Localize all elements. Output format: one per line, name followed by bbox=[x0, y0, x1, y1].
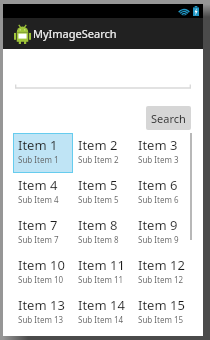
staticText: Sub Item 3 bbox=[138, 154, 179, 165]
staticText: Search bbox=[151, 111, 186, 126]
staticText: Sub Item 12 bbox=[138, 274, 184, 285]
button[interactable]: Item 6 bbox=[133, 173, 193, 213]
staticText: Sub Item 9 bbox=[138, 234, 179, 245]
staticText: Sub Item 11 bbox=[78, 274, 124, 285]
staticText: Sub Item 8 bbox=[78, 234, 119, 245]
staticText: Item 3 bbox=[138, 136, 178, 154]
button[interactable]: Item 2 bbox=[73, 133, 133, 173]
button[interactable]: Item 10 bbox=[13, 253, 73, 293]
staticText: Sub Item 1 bbox=[18, 154, 59, 165]
button[interactable]: Item 14 bbox=[73, 293, 133, 333]
staticText: Item 13 bbox=[18, 296, 65, 314]
staticText: Item 1 bbox=[18, 136, 58, 154]
button[interactable]: App icon bbox=[3, 18, 203, 49]
staticText: Sub Item 7 bbox=[18, 234, 59, 245]
button[interactable]: Item 5 bbox=[73, 173, 133, 213]
staticText: Item 12 bbox=[138, 256, 185, 274]
button[interactable]: Item 3 bbox=[133, 133, 193, 173]
staticText: Sub Item 4 bbox=[18, 194, 59, 205]
staticText: Item 15 bbox=[138, 296, 185, 314]
button[interactable]: Item 15 bbox=[133, 293, 193, 333]
staticText: Sub Item 10 bbox=[18, 274, 64, 285]
staticText: Item 9 bbox=[138, 216, 178, 234]
staticText: Item 2 bbox=[78, 136, 118, 154]
button[interactable]: Item 1 bbox=[13, 133, 73, 173]
staticText: Item 10 bbox=[18, 256, 65, 274]
button[interactable]: Item 4 bbox=[13, 173, 73, 213]
staticText: Item 6 bbox=[138, 176, 178, 194]
staticText: Item 4 bbox=[18, 176, 58, 194]
button[interactable]: Item 13 bbox=[13, 293, 73, 333]
staticText: Item 7 bbox=[18, 216, 58, 234]
other: App icon bbox=[14, 24, 31, 44]
button[interactable]: Search query bbox=[15, 70, 191, 89]
staticText: Item 11 bbox=[78, 256, 125, 274]
button[interactable]: Item 12 bbox=[133, 253, 193, 293]
staticText: Item 14 bbox=[78, 296, 125, 314]
staticText: Sub Item 14 bbox=[78, 314, 124, 325]
staticText: Sub Item 15 bbox=[138, 314, 184, 325]
staticText: Sub Item 2 bbox=[78, 154, 119, 165]
staticText: Sub Item 6 bbox=[138, 194, 179, 205]
staticText: MyImageSearch bbox=[33, 26, 117, 41]
staticText: Sub Item 13 bbox=[18, 314, 64, 325]
button[interactable]: Item 11 bbox=[73, 253, 133, 293]
staticText: Sub Item 5 bbox=[78, 194, 119, 205]
button[interactable]: Item 8 bbox=[73, 213, 133, 253]
button[interactable]: Search bbox=[146, 106, 191, 130]
button[interactable]: Item 7 bbox=[13, 213, 73, 253]
staticText: Item 8 bbox=[78, 216, 118, 234]
staticText: Item 5 bbox=[78, 176, 118, 194]
button[interactable]: Item 9 bbox=[133, 213, 193, 253]
